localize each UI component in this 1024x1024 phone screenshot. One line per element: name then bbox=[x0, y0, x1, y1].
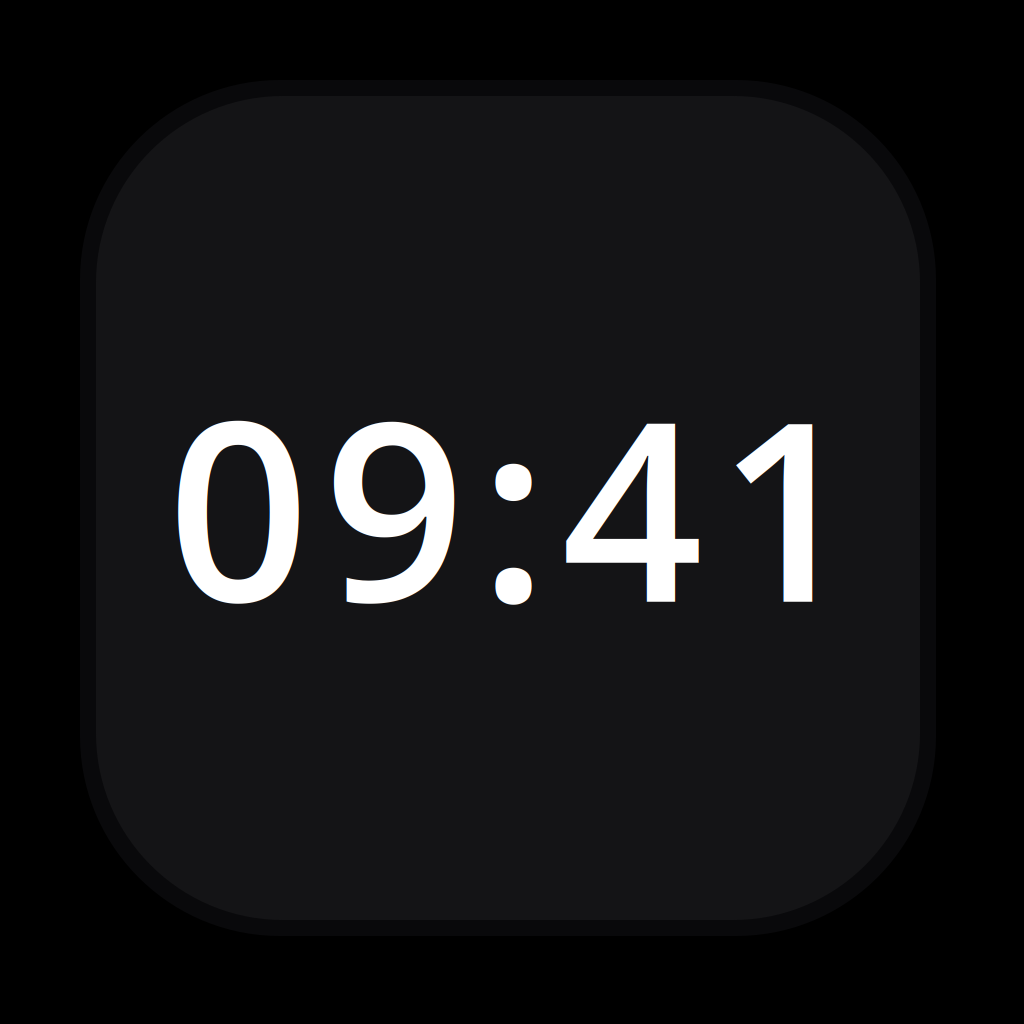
staticText: 09:41 bbox=[168, 337, 860, 674]
